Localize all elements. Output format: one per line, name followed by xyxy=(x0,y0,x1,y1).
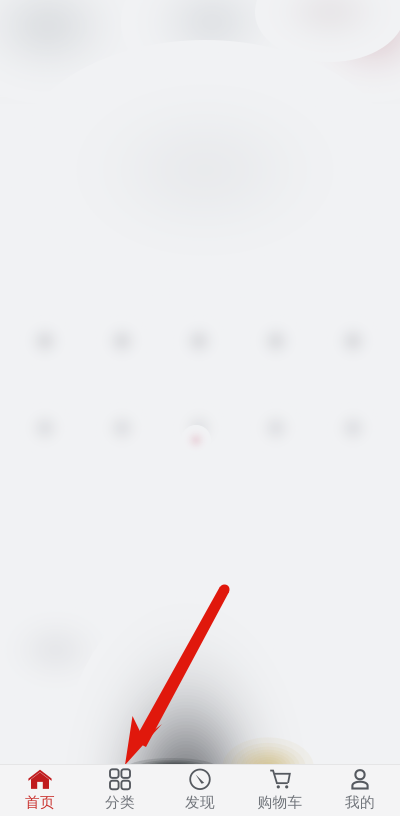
staticText: 首页 xyxy=(25,793,55,811)
button[interactable]: 分类 xyxy=(80,765,160,816)
staticText: 购物车 xyxy=(257,793,302,811)
button[interactable]: 发现 xyxy=(160,765,240,816)
button[interactable]: 购物车 xyxy=(240,765,320,816)
button[interactable]: 我的 xyxy=(320,765,400,816)
button[interactable]: 首页 xyxy=(0,765,80,816)
staticText: 分类 xyxy=(105,793,135,811)
staticText: 我的 xyxy=(345,793,375,811)
staticText: 发现 xyxy=(185,793,215,811)
